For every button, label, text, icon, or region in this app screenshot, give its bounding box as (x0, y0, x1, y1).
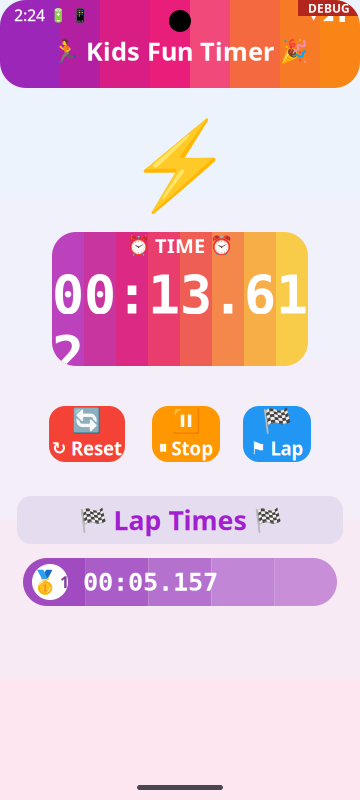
staticText: 00:13.612 (52, 265, 308, 386)
staticText: ⏰ (210, 235, 233, 256)
staticText: Reset (71, 436, 122, 461)
staticText: 🏁 (78, 507, 106, 533)
staticText: TIME (155, 232, 205, 259)
staticText: DEBUG (308, 0, 350, 16)
staticText: 🏃 (52, 38, 80, 64)
staticText: ⏸️ (171, 407, 201, 435)
staticText: 📱 (72, 7, 89, 23)
staticText: 00:05.157 (83, 568, 218, 596)
button[interactable]: 🥇 (23, 558, 337, 606)
staticText: 🔄 (72, 407, 102, 435)
button[interactable]: ⏸️ (152, 406, 220, 462)
staticText: 🏁 (262, 407, 292, 435)
staticText: 🏁 (253, 507, 281, 533)
staticText: ⏸ (158, 440, 167, 457)
staticText: 🥇 (31, 569, 59, 595)
staticText: Lap (270, 436, 303, 461)
staticText: 1 (60, 571, 69, 593)
button[interactable]: 🔄 (49, 406, 125, 462)
staticText: Stop (171, 436, 213, 461)
staticText: 🎉 (280, 38, 308, 64)
staticText: 🔋 (50, 7, 67, 23)
button[interactable]: 🏁 (243, 406, 311, 462)
staticText: ⚑ (250, 438, 266, 458)
staticText: 2:24 (14, 4, 45, 26)
staticText: ⏰ (127, 235, 150, 256)
staticText: Lap Times (113, 502, 246, 538)
staticText: ▮ (338, 7, 346, 23)
staticText: ⚡ (127, 117, 233, 215)
staticText: ◢ (323, 7, 333, 22)
staticText: ▼ (309, 8, 318, 22)
staticText: ↻ (52, 438, 67, 458)
staticText: Kids Fun Timer (86, 34, 274, 68)
